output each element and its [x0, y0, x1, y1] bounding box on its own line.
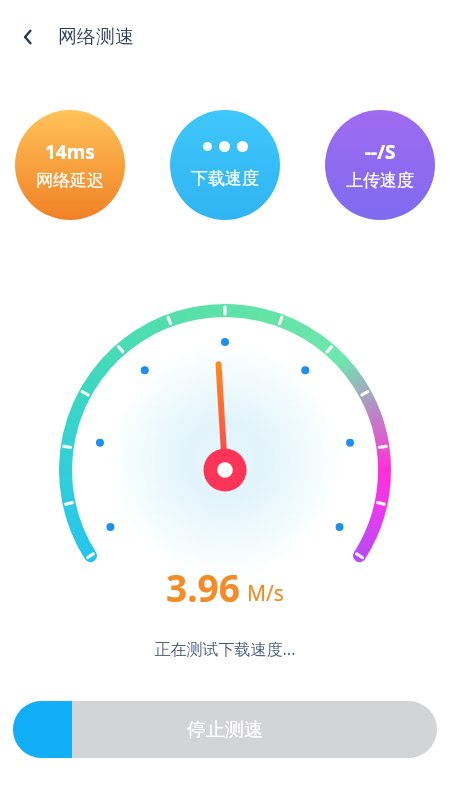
staticText: M/s	[247, 579, 284, 608]
staticText: 停止测速	[187, 718, 263, 742]
staticText: 14ms	[45, 139, 95, 165]
staticText: 正在测试下载速度...	[0, 638, 450, 660]
staticText: 下载速度	[191, 168, 259, 189]
button[interactable]: 下载速度	[170, 110, 280, 220]
button[interactable]: Back	[8, 17, 48, 57]
staticText: 网络测速	[58, 25, 134, 49]
button[interactable]: 停止测速	[13, 701, 437, 758]
button[interactable]: --/S	[325, 110, 435, 220]
staticText: 3.96	[166, 562, 240, 612]
staticText: --/S	[365, 139, 396, 165]
staticText: 网络延迟	[36, 170, 104, 191]
staticText: 上传速度	[346, 170, 414, 191]
button[interactable]: 14ms	[15, 110, 125, 220]
